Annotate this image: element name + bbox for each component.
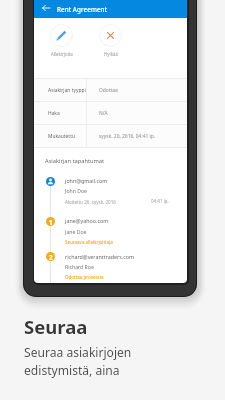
staticText: syysk. 20, 2016, 04:41 ip. <box>99 133 156 140</box>
button[interactable]: Step 2 <box>46 252 55 261</box>
staticText: Mukautettu <box>48 133 75 140</box>
staticText: Hylkää <box>104 51 118 57</box>
button[interactable]: Allekirjoita <box>37 24 86 57</box>
staticText: Seuraava allekirjoittaja <box>65 239 113 245</box>
button[interactable]: Hylkää <box>86 24 135 57</box>
button[interactable]: Step 1 <box>46 217 55 226</box>
staticText: jane@yahoo.com <box>65 217 109 224</box>
staticText: Haka <box>48 110 60 117</box>
staticText: Asiakirjan tyyppi <box>48 87 86 94</box>
staticText: Jane Doe <box>65 228 87 235</box>
staticText: john@gmail.com <box>65 177 108 184</box>
staticText: Richard Roe <box>65 263 94 270</box>
staticText: Odottaa <box>99 87 118 94</box>
staticText: 2 <box>49 253 53 261</box>
staticText: N/A <box>99 110 108 117</box>
staticText: Seuraa asiakirjojen edistymistä, aina <box>24 344 132 378</box>
staticText: richard@veranttraders.com <box>65 253 135 260</box>
staticText: Seuraa <box>24 314 88 339</box>
staticText: 04:41 ip. <box>151 198 169 204</box>
staticText: Odottaa prosessia <box>65 274 104 280</box>
staticText: John Doe <box>65 187 87 194</box>
staticText: Rent Agreement <box>57 5 108 14</box>
staticText: Allekirjoita <box>51 51 73 57</box>
button[interactable]: Back <box>38 1 53 16</box>
staticText: Asiakirjan tapahtumat <box>45 157 105 165</box>
staticText: Aloitettu 26. syysk. 2016 <box>65 199 116 205</box>
button[interactable]: Signer <box>46 177 55 186</box>
staticText: 1 <box>49 218 53 226</box>
